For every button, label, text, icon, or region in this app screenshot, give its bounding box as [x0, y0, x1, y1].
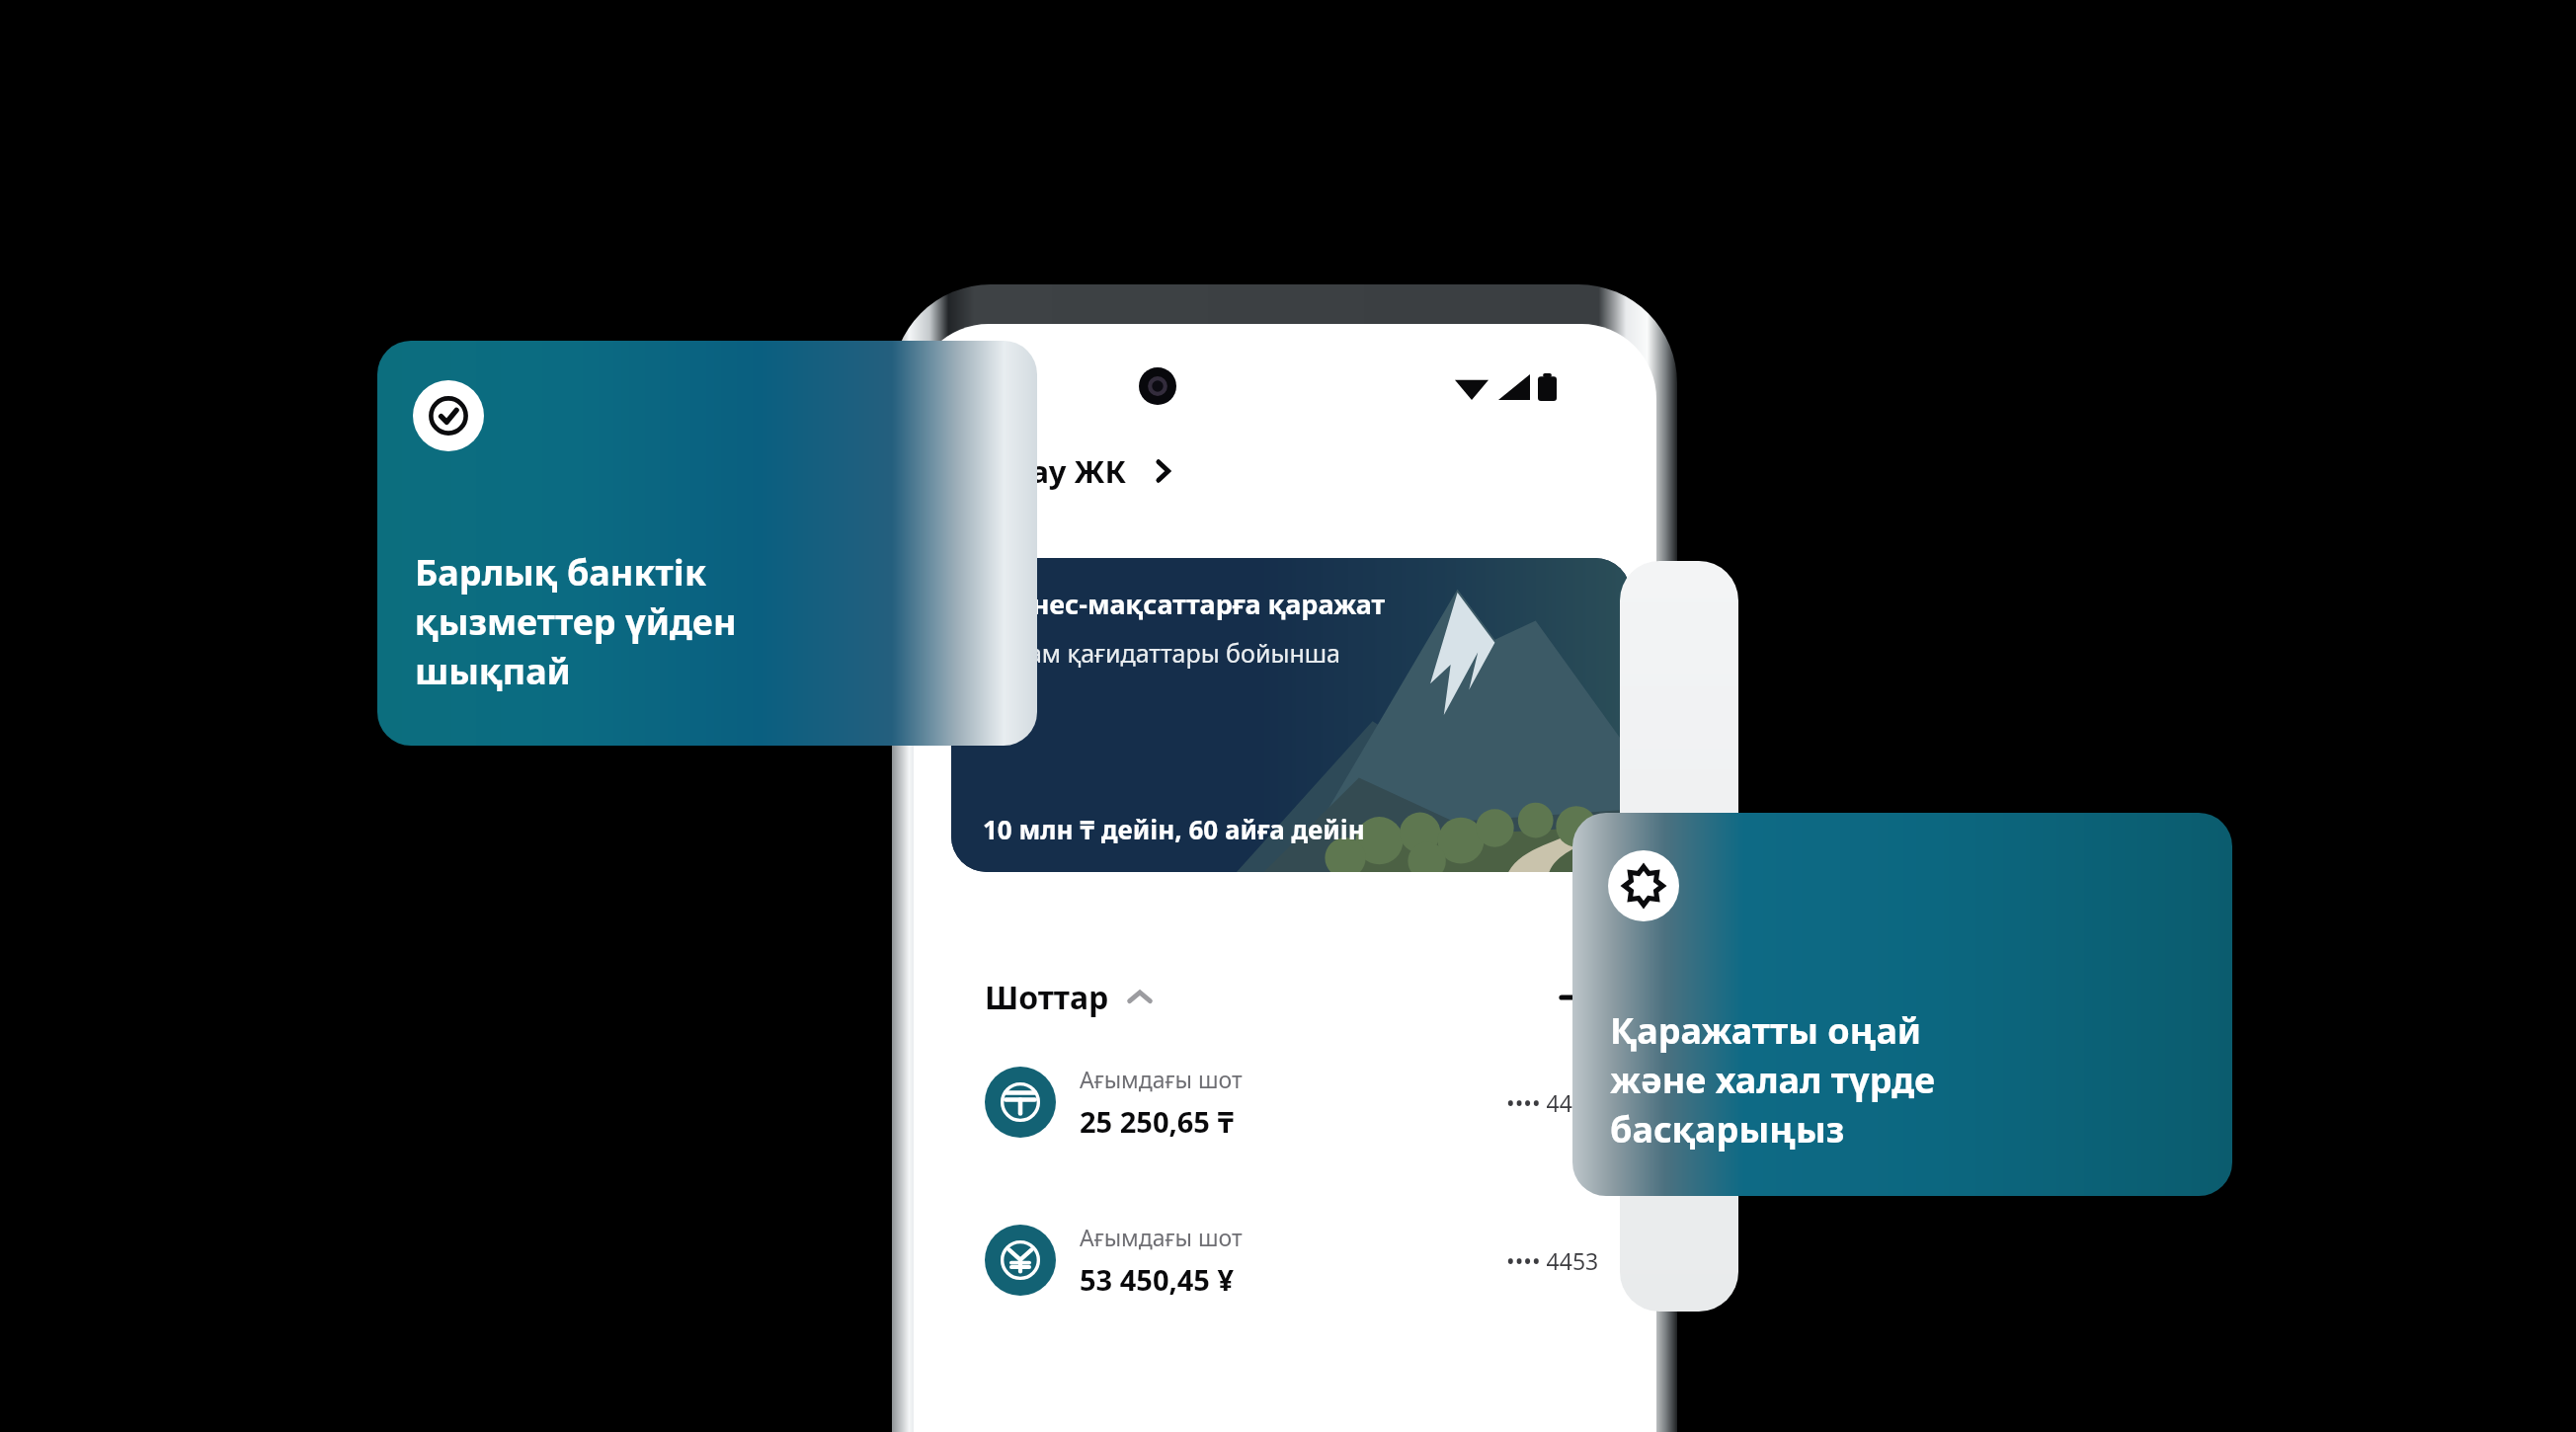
staticText: 10 млн ₸ дейін, 60 айға дейін — [983, 812, 1365, 846]
staticText: Ислам қағидаттары бойынша — [983, 636, 1340, 670]
button[interactable]: Барлық банктік қызметтер үйден шықпай — [377, 341, 1037, 746]
staticText: Қаражатты оңай және халал түрде басқарың… — [1610, 1006, 1936, 1154]
staticText: 53 450,45 ¥ — [1080, 1260, 1235, 1299]
staticText: 25 250,65 ₸ — [1080, 1102, 1235, 1141]
staticText: •••• 4453 — [1506, 1087, 1599, 1118]
button[interactable]: Ағымдағы шот — [951, 1064, 1631, 1141]
staticText: Барлық банктік қызметтер үйден шықпай — [415, 548, 737, 695]
staticText: Ағымдағы шот — [1080, 1222, 1243, 1252]
button[interactable]: Бизнес-мақсаттарға қаражат — [951, 558, 1631, 872]
staticText: •••• 4453 — [1506, 1245, 1599, 1276]
button[interactable]: Add account — [1554, 975, 1599, 1020]
staticText: Алатау ЖК — [957, 450, 1126, 492]
button[interactable]: Шоттар — [985, 976, 1153, 1019]
staticText: Шоттар — [985, 976, 1109, 1019]
staticText: Ағымдағы шот — [1080, 1064, 1243, 1094]
staticText: Бизнес-мақсаттарға қаражат — [983, 586, 1386, 622]
button[interactable]: Қаражатты оңай және халал түрде басқарың… — [1572, 813, 2232, 1196]
button[interactable]: Ағымдағы шот — [951, 1222, 1631, 1299]
button[interactable]: Алатау ЖК — [914, 450, 1656, 492]
